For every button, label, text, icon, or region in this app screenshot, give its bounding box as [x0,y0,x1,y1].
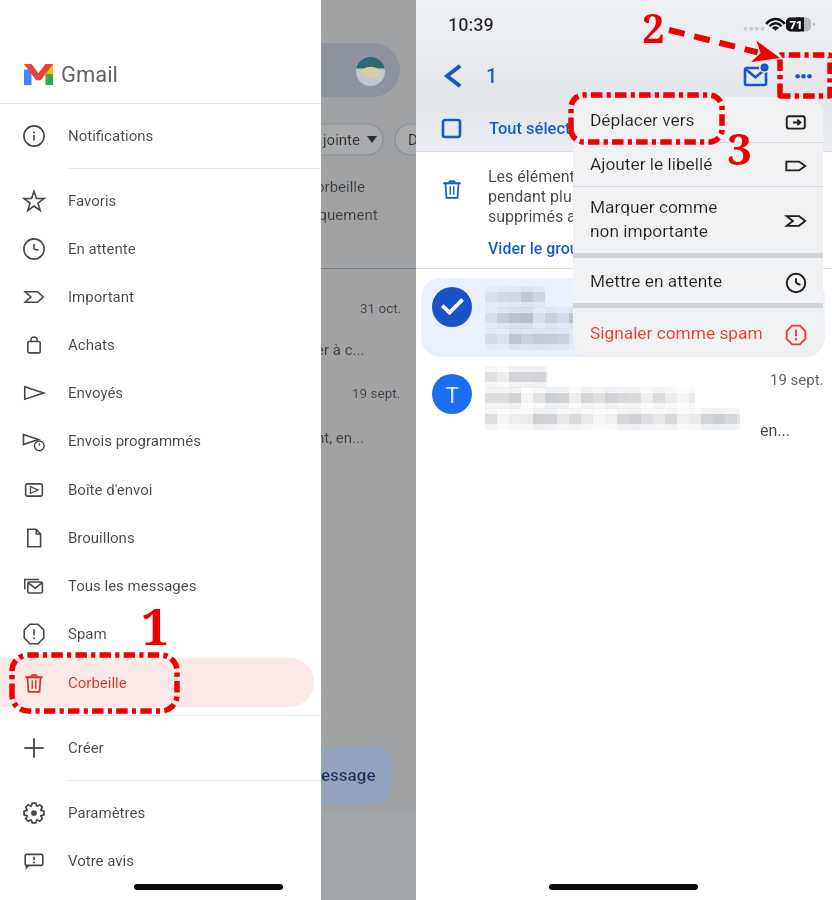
button[interactable]: Notifications [0,112,321,160]
button[interactable]: Envoyés [0,369,321,417]
staticText: 3 [727,118,752,178]
staticText: Marquer comme non importante [590,197,718,241]
staticText: Tout sélectionner [489,119,618,138]
staticText: 31 oct. [360,300,402,316]
staticText: Gmail [61,62,118,88]
button[interactable]: En attente [0,225,321,273]
staticText: essage [321,765,376,785]
staticText: 10:39 [448,14,494,35]
button[interactable]: Paramètres [0,789,321,837]
staticText: D [408,131,418,149]
button[interactable] [421,278,825,357]
button[interactable] [573,308,823,357]
button[interactable]: Votre avis [0,837,321,885]
staticText: Brouillons [68,529,135,547]
staticText: Créer [68,739,104,757]
staticText: Mettre en attente [590,271,723,291]
staticText: Boîte d'envoi [68,481,153,499]
staticText: Spam [68,625,107,643]
button[interactable]: Favoris [0,177,321,225]
button[interactable]: Brouillons [0,514,321,562]
button[interactable]: Tous les messages [0,562,321,610]
staticText: Paramètres [68,804,146,822]
button[interactable]: More options [780,56,822,96]
staticText: tiquement [310,206,378,224]
button[interactable] [573,97,823,142]
staticText: Ajouter le libellé [590,154,713,174]
staticText: 71 [787,18,805,31]
button[interactable]: Envois programmés [0,417,321,465]
staticText: 1 [486,64,498,87]
staticText: jointe [323,131,360,149]
button[interactable]: Mark as unread [727,56,767,96]
button[interactable]: Corbeille [0,659,321,707]
staticText: en... [760,421,790,440]
button[interactable] [573,258,823,303]
staticText: er à c... [316,341,365,359]
button[interactable]: Tout sélectionner [416,105,832,151]
staticText: 19 sept. [770,371,824,389]
button[interactable]: Important [0,273,321,321]
staticText: 1 [141,592,170,660]
staticText: Achats [68,336,115,354]
staticText: Tous les messages [68,577,197,595]
button[interactable]: Achats [0,321,321,369]
staticText: 19 sept. [352,385,401,401]
staticText: Envois programmés [68,432,201,450]
staticText: Déplacer vers [590,110,695,130]
staticText: Notifications [68,127,154,145]
button[interactable] [573,187,823,255]
staticText: nt, en... [316,429,364,447]
button[interactable] [573,143,823,186]
staticText: Signaler comme spam [590,323,763,343]
button[interactable]: Spam [0,610,321,658]
staticText: Envoyés [68,384,124,402]
button[interactable]: Vider le groupe de discussion [488,239,699,258]
staticText: 2 [642,0,665,54]
staticText: En attente [68,240,136,258]
button[interactable]: Créer [0,724,321,772]
button[interactable]: Back [432,54,476,98]
staticText: Favoris [68,192,117,210]
button[interactable]: Boîte d'envoi [0,466,321,514]
staticText: T [432,383,472,409]
staticText: Les éléments présents dans la corbeille … [488,167,769,226]
staticText: orbeille [316,178,365,196]
staticText: Important [68,288,134,306]
staticText: Votre avis [68,852,134,870]
staticText: Corbeille [68,674,127,692]
